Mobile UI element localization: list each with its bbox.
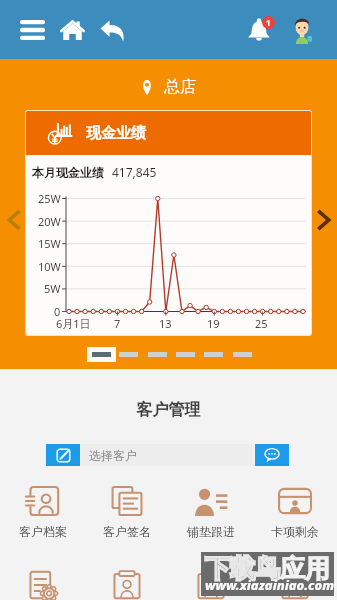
button[interactable]: 客户档案 xyxy=(0,485,85,539)
button[interactable]: Menu xyxy=(12,10,52,50)
staticText: 25 xyxy=(255,316,268,331)
staticText: 现金业绩 xyxy=(86,124,146,143)
button[interactable]: 消费记录 xyxy=(253,570,337,600)
button[interactable]: 选择客户 xyxy=(46,444,253,466)
staticText: 10W xyxy=(38,259,61,274)
staticText: 0 xyxy=(54,304,61,319)
staticText: 卡项剩余 xyxy=(271,524,319,539)
staticText: 13 xyxy=(159,316,172,331)
staticText: 本月现金业绩 xyxy=(32,165,104,180)
staticText: 客户档案 xyxy=(19,524,67,539)
staticText: 19 xyxy=(207,316,220,331)
button[interactable]: Previous xyxy=(1,207,27,233)
staticText: www.xiazainiao.com xyxy=(205,576,335,594)
button[interactable]: Chat xyxy=(255,444,289,466)
staticText: 5W xyxy=(44,281,61,296)
button[interactable]: Page 1 xyxy=(87,347,116,362)
button[interactable]: 美容记录 xyxy=(85,570,169,600)
staticText: 总店 xyxy=(164,77,196,97)
button[interactable]: Notifications xyxy=(239,10,279,50)
staticText: 铺垫跟进 xyxy=(187,524,235,539)
button[interactable]: 总店 xyxy=(0,72,337,102)
staticText: 417,845 xyxy=(112,164,157,180)
staticText: 1 xyxy=(266,17,271,28)
button[interactable]: 卡项剩余 xyxy=(253,485,337,539)
button[interactable]: Next xyxy=(310,207,336,233)
button[interactable]: Back xyxy=(92,10,132,50)
staticText: 客户管理 xyxy=(0,400,337,420)
staticText: 下载鸟 xyxy=(205,553,280,584)
staticText: 客户签名 xyxy=(103,524,151,539)
staticText: 应用 xyxy=(280,553,330,584)
staticText: 20W xyxy=(38,214,61,229)
button[interactable]: 铺垫跟进 xyxy=(169,485,253,539)
button[interactable]: Profile xyxy=(285,13,319,47)
button[interactable]: 健康档案 xyxy=(169,570,253,600)
staticText: 7 xyxy=(114,316,121,331)
staticText: 6月1日 xyxy=(56,316,91,331)
button[interactable]: Home xyxy=(52,10,92,50)
button[interactable]: 项目设置 xyxy=(0,570,85,600)
staticText: 25W xyxy=(38,191,61,206)
staticText: 15W xyxy=(38,236,61,251)
staticText: 选择客户 xyxy=(89,448,137,463)
button[interactable]: 客户签名 xyxy=(85,485,169,539)
